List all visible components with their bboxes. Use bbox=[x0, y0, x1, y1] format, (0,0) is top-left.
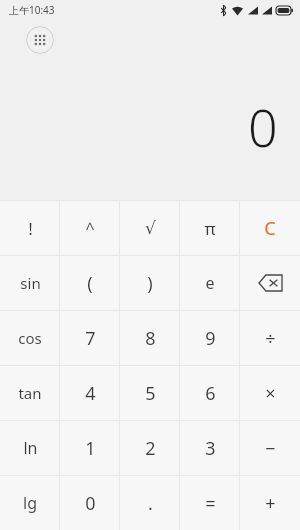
button[interactable]: Menu bbox=[26, 26, 54, 54]
staticText: cos bbox=[18, 328, 42, 348]
staticText: ( bbox=[87, 271, 93, 296]
staticText: 6 bbox=[205, 381, 216, 406]
button[interactable]: ) bbox=[120, 256, 180, 310]
button[interactable]: × bbox=[240, 366, 300, 420]
button[interactable]: ^ bbox=[60, 201, 120, 255]
staticText: 0 bbox=[248, 91, 278, 162]
button[interactable]: 7 bbox=[60, 311, 120, 365]
button[interactable]: 3 bbox=[180, 421, 240, 475]
staticText: 0 bbox=[85, 491, 96, 516]
staticText: 3 bbox=[205, 436, 216, 461]
staticText: 5 bbox=[145, 381, 156, 406]
button[interactable]: √ bbox=[120, 201, 180, 255]
staticText: 4 bbox=[85, 381, 96, 406]
staticText: − bbox=[265, 436, 276, 461]
staticText: sin bbox=[20, 273, 41, 293]
staticText: √ bbox=[145, 218, 156, 238]
button[interactable]: ÷ bbox=[240, 311, 300, 365]
staticText: C bbox=[264, 216, 276, 241]
button[interactable]: tan bbox=[0, 366, 60, 420]
staticText: × bbox=[265, 381, 276, 406]
staticText: 2 bbox=[145, 436, 156, 461]
button[interactable]: + bbox=[240, 476, 300, 530]
staticText: 上午10:43 bbox=[9, 3, 55, 17]
staticText: 9 bbox=[205, 326, 216, 351]
staticText: lg bbox=[23, 492, 37, 514]
button[interactable]: 5 bbox=[120, 366, 180, 420]
staticText: 8 bbox=[145, 326, 156, 351]
button[interactable]: π bbox=[180, 201, 240, 255]
button[interactable]: sin bbox=[0, 256, 60, 310]
staticText: 1 bbox=[85, 436, 96, 461]
button[interactable]: cos bbox=[0, 311, 60, 365]
staticText: = bbox=[205, 491, 216, 516]
staticText: ^ bbox=[85, 217, 95, 239]
staticText: . bbox=[148, 491, 153, 516]
button[interactable]: lg bbox=[0, 476, 60, 530]
button[interactable]: Backspace bbox=[240, 256, 300, 310]
staticText: ÷ bbox=[265, 326, 276, 351]
staticText: + bbox=[265, 491, 276, 516]
button[interactable]: = bbox=[180, 476, 240, 530]
button[interactable]: 6 bbox=[180, 366, 240, 420]
staticText: ! bbox=[28, 217, 33, 240]
button[interactable]: ( bbox=[60, 256, 120, 310]
button[interactable]: 2 bbox=[120, 421, 180, 475]
staticText: e bbox=[205, 272, 215, 294]
staticText: 7 bbox=[85, 326, 96, 351]
button[interactable]: . bbox=[120, 476, 180, 530]
staticText: tan bbox=[18, 383, 42, 403]
button[interactable]: ! bbox=[0, 201, 60, 255]
button[interactable]: e bbox=[180, 256, 240, 310]
button[interactable]: 4 bbox=[60, 366, 120, 420]
staticText: π bbox=[204, 217, 216, 240]
button[interactable]: 8 bbox=[120, 311, 180, 365]
button[interactable]: − bbox=[240, 421, 300, 475]
button[interactable]: 1 bbox=[60, 421, 120, 475]
button[interactable]: 9 bbox=[180, 311, 240, 365]
button[interactable]: 0 bbox=[60, 476, 120, 530]
staticText: ln bbox=[23, 437, 38, 459]
staticText: ) bbox=[147, 271, 153, 296]
button[interactable]: C bbox=[240, 201, 300, 255]
button[interactable]: ln bbox=[0, 421, 60, 475]
